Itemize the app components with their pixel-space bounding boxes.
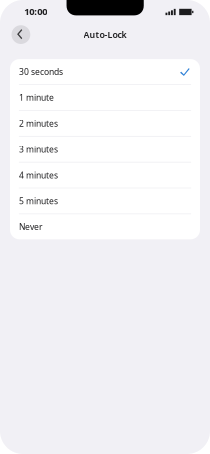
staticText: Never — [19, 221, 43, 233]
staticText: 1 minute — [19, 92, 54, 103]
staticText: 3 minutes — [19, 143, 58, 155]
button[interactable]: Back — [11, 25, 30, 44]
staticText: 10:00 — [24, 5, 47, 18]
button[interactable]: 3 minutes — [10, 137, 200, 162]
staticText: 30 seconds — [19, 66, 63, 77]
staticText: Auto-Lock — [83, 29, 126, 41]
button[interactable]: 30 seconds — [10, 59, 200, 84]
staticText: 2 minutes — [19, 118, 58, 129]
staticText: 4 minutes — [19, 169, 58, 181]
button[interactable]: Never — [10, 214, 200, 239]
button[interactable]: 1 minute — [10, 85, 200, 110]
button[interactable]: 4 minutes — [10, 162, 200, 188]
staticText: 5 minutes — [19, 195, 58, 207]
button[interactable]: 5 minutes — [10, 188, 200, 213]
button[interactable]: 2 minutes — [10, 111, 200, 136]
